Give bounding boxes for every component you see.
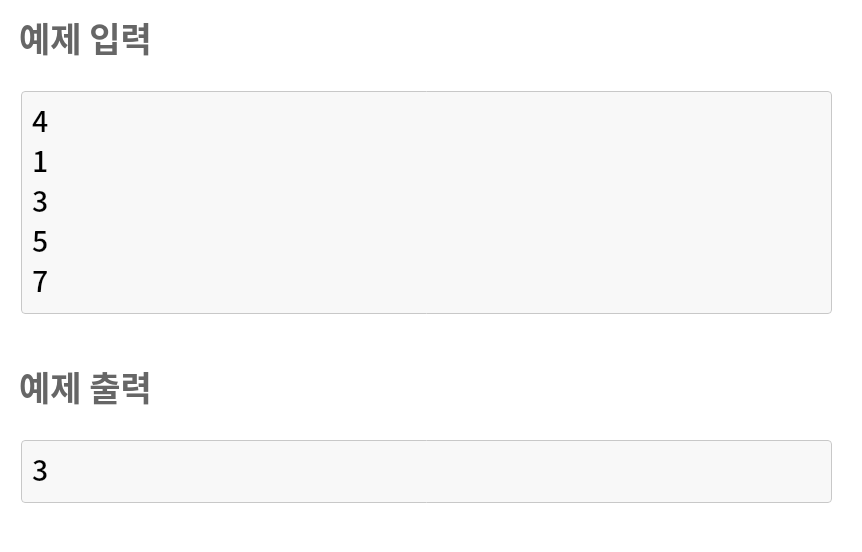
staticText: 예제 입력 xyxy=(19,13,152,62)
staticText: 4 1 3 5 7 xyxy=(32,99,49,300)
button[interactable]: 예제 입력 복사 xyxy=(21,91,832,314)
staticText: 3 xyxy=(32,448,49,489)
button[interactable]: 예제 출력 복사 xyxy=(21,440,832,503)
staticText: 예제 출력 xyxy=(19,362,152,411)
